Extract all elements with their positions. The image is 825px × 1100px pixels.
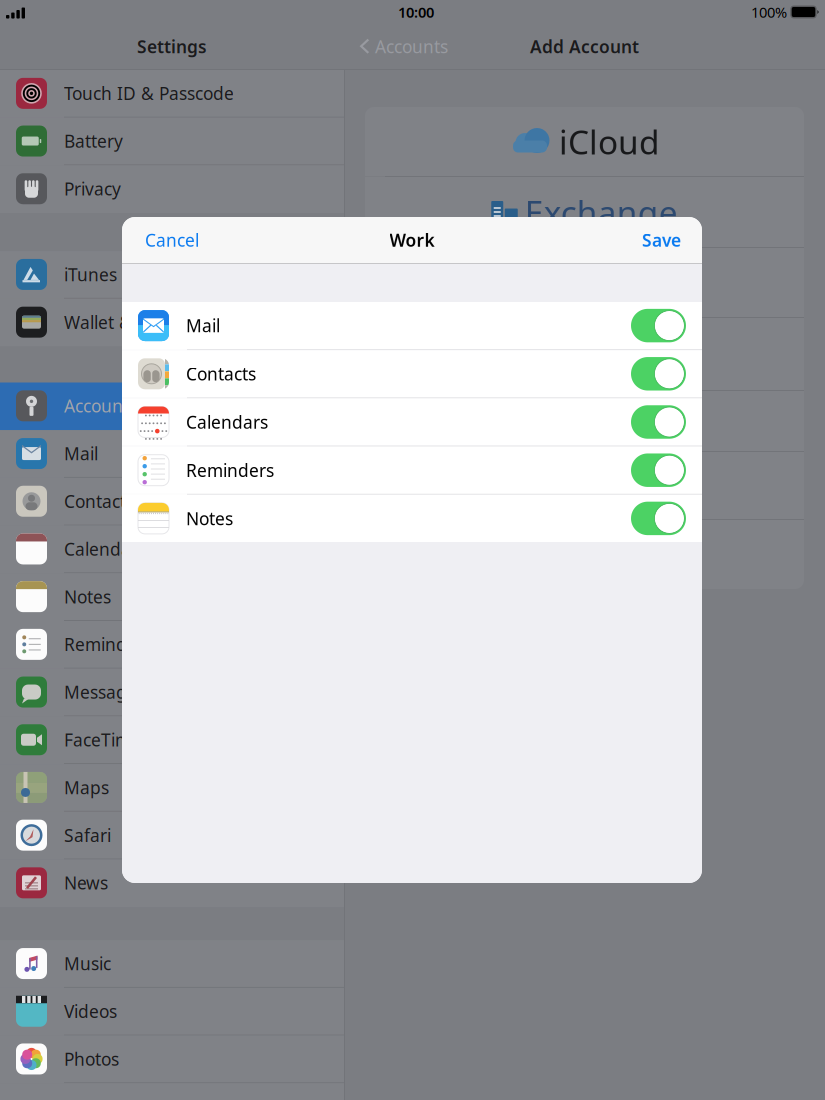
button[interactable]: Calendars: [122, 398, 702, 446]
staticText: iCloud: [559, 119, 660, 164]
staticText: Calendars: [64, 537, 146, 560]
staticText: News: [64, 871, 108, 894]
button[interactable]: Music: [0, 940, 344, 988]
button[interactable]: [365, 318, 804, 390]
button[interactable]: News: [0, 859, 344, 907]
button[interactable]: Videos: [0, 988, 344, 1036]
button[interactable]: Exchange: [365, 177, 804, 247]
button[interactable]: [365, 248, 804, 317]
staticText: Music: [64, 952, 111, 975]
button[interactable]: Notes: [0, 573, 344, 621]
button[interactable]: Contacts: [0, 478, 344, 526]
staticText: Accounts & Passwords: [64, 394, 246, 417]
staticText: Videos: [64, 1000, 117, 1023]
button[interactable]: Cancel: [122, 217, 211, 263]
staticText: Battery: [64, 129, 123, 152]
button[interactable]: Accounts: [344, 24, 448, 69]
button[interactable]: iTunes & App Store: [0, 251, 344, 299]
button[interactable]: [365, 520, 804, 589]
staticText: Save: [642, 228, 681, 251]
button[interactable]: [365, 452, 804, 519]
button[interactable]: Messages: [0, 669, 344, 716]
staticText: FaceTime: [64, 728, 141, 751]
staticText: Add Account: [530, 35, 639, 58]
staticText: Contacts: [186, 362, 256, 385]
staticText: Maps: [64, 776, 109, 799]
button[interactable]: FaceTime: [0, 716, 344, 764]
button[interactable]: [365, 391, 804, 451]
button[interactable]: Wallet & Apple Pay: [0, 299, 344, 346]
staticText: Safari: [64, 824, 111, 847]
button[interactable]: Contacts: [122, 350, 702, 397]
button[interactable]: Maps: [0, 764, 344, 812]
staticText: 10:00: [398, 2, 434, 22]
button[interactable]: Safari: [0, 812, 344, 859]
staticText: Accounts: [375, 35, 448, 58]
button[interactable]: Accounts & Passwords: [0, 382, 344, 430]
staticText: Photos: [64, 1047, 119, 1070]
staticText: Calendars: [186, 410, 268, 433]
staticText: Work: [389, 228, 434, 251]
staticText: 100%: [751, 2, 787, 22]
button[interactable]: Privacy: [0, 165, 344, 213]
button[interactable]: Calendars: [0, 526, 344, 573]
staticText: Notes: [64, 585, 111, 608]
button[interactable]: Touch ID & Passcode: [0, 70, 344, 118]
button[interactable]: Reminders: [122, 447, 702, 494]
button[interactable]: Mail: [0, 430, 344, 478]
staticText: Notes: [186, 507, 233, 530]
button[interactable]: Save: [630, 217, 702, 263]
button[interactable]: Mail: [122, 302, 702, 349]
button[interactable]: Battery: [0, 118, 344, 165]
staticText: Cancel: [145, 228, 199, 251]
staticText: Touch ID & Passcode: [64, 82, 234, 105]
staticText: Mail: [64, 442, 98, 465]
staticText: Messages: [64, 680, 145, 703]
staticText: Contacts: [64, 490, 134, 513]
staticText: Settings: [137, 35, 207, 58]
staticText: Reminders: [64, 633, 152, 656]
button[interactable]: Notes: [122, 495, 702, 542]
staticText: iTunes & App Store: [64, 263, 221, 286]
staticText: Exchange: [525, 190, 678, 234]
staticText: Wallet & Apple Pay: [64, 311, 218, 334]
button[interactable]: Reminders: [0, 621, 344, 669]
button[interactable]: iCloud: [365, 107, 804, 176]
staticText: Mail: [186, 314, 220, 337]
staticText: Privacy: [64, 177, 121, 200]
staticText: Reminders: [186, 459, 274, 482]
button[interactable]: Photos: [0, 1036, 344, 1083]
